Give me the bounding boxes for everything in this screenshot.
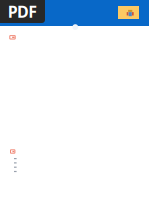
button[interactable]: Link <box>14 158 17 159</box>
button[interactable]: Link <box>14 171 17 172</box>
button[interactable]: New Jersey <box>118 6 139 19</box>
button[interactable]: Link <box>14 167 17 168</box>
staticText: PDF <box>8 1 37 22</box>
button[interactable]: Link <box>14 162 17 163</box>
button[interactable]: PDF <box>0 0 45 23</box>
